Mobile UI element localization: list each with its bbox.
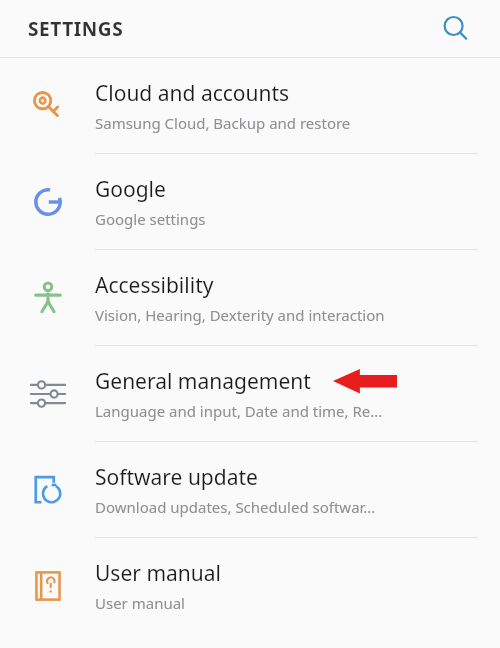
button[interactable]: User manual bbox=[0, 538, 500, 633]
button[interactable]: Google bbox=[0, 154, 500, 249]
staticText: Vision, Hearing, Dexterity and interacti… bbox=[95, 305, 385, 325]
button[interactable]: Software update bbox=[0, 442, 500, 537]
staticText: Software update bbox=[95, 463, 258, 492]
staticText: Google settings bbox=[95, 209, 206, 229]
button[interactable]: Search bbox=[434, 7, 478, 51]
staticText: User manual bbox=[95, 593, 185, 613]
staticText: Download updates, Scheduled softwar… bbox=[95, 497, 376, 517]
staticText: Accessibility bbox=[95, 271, 214, 300]
staticText: General management bbox=[95, 367, 311, 396]
staticText: Samsung Cloud, Backup and restore bbox=[95, 113, 351, 133]
button[interactable]: Cloud and accounts bbox=[0, 58, 500, 153]
staticText: Cloud and accounts bbox=[95, 79, 290, 108]
staticText: SETTINGS bbox=[28, 16, 124, 42]
staticText: Google bbox=[95, 175, 166, 204]
staticText: Language and input, Date and time, Re… bbox=[95, 401, 383, 421]
staticText: User manual bbox=[95, 559, 221, 588]
button[interactable]: Accessibility bbox=[0, 250, 500, 345]
button[interactable]: General management bbox=[0, 346, 500, 441]
